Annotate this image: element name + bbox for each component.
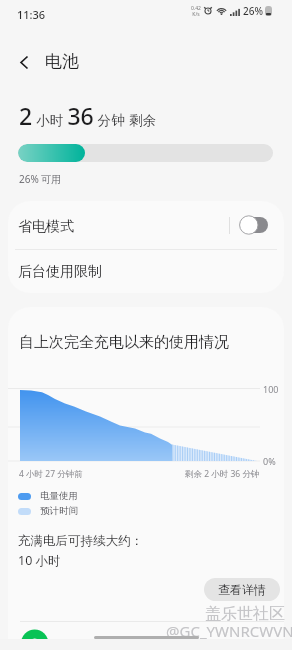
button[interactable]: 省电模式 — [8, 201, 284, 249]
staticText: 剩余 2 小时 36 分钟 — [185, 468, 260, 480]
staticText: 0% — [263, 455, 276, 467]
button[interactable]: Back — [9, 47, 39, 77]
staticText: @GC_YWNRCWVN — [166, 621, 292, 641]
staticText: 2 小时 36 分钟 剩余 — [19, 100, 157, 131]
button[interactable]: App battery usage — [8, 622, 284, 639]
staticText: 10 小时 — [18, 552, 61, 569]
button[interactable]: 后台使用限制 — [8, 250, 284, 293]
staticText: 预计时间 — [40, 505, 78, 517]
staticText: 0.42 K/s — [191, 5, 201, 18]
button[interactable]: 查看详情 — [204, 578, 280, 601]
button[interactable]: Power saving mode toggle — [240, 215, 268, 235]
staticText: 100 — [263, 383, 279, 395]
staticText: 电量使用 — [40, 490, 78, 502]
button[interactable]: 电量使用 — [18, 490, 78, 502]
staticText: 充满电后可持续大约： — [18, 533, 143, 549]
staticText: 4 小时 27 分钟前 — [19, 468, 83, 480]
button[interactable]: 预计时间 — [18, 505, 78, 517]
staticText: 电池 — [45, 51, 79, 72]
staticText: 盖乐世社区 — [205, 604, 285, 624]
staticText: 26% — [243, 4, 263, 18]
staticText: 26% 可用 — [19, 172, 62, 186]
staticText: 查看详情 — [218, 582, 266, 597]
staticText: 后台使用限制 — [18, 263, 102, 281]
staticText: 自上次完全充电以来的使用情况 — [19, 333, 229, 352]
staticText: 11:36 — [17, 7, 46, 22]
staticText: 省电模式 — [18, 218, 229, 236]
